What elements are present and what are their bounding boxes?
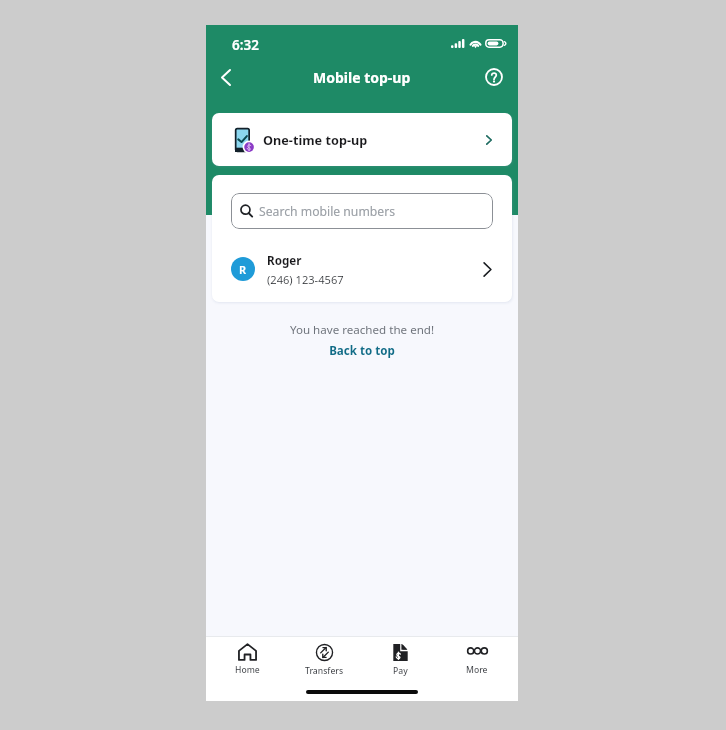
button[interactable]: Back to top xyxy=(206,343,518,359)
button[interactable]: Transfers xyxy=(289,637,359,680)
staticText: More xyxy=(466,664,488,676)
staticText: Transfers xyxy=(305,665,344,676)
button[interactable]: Home xyxy=(212,637,282,680)
staticText: Mobile top-up xyxy=(313,68,411,87)
button[interactable]: Back xyxy=(208,59,244,95)
staticText: Search mobile numbers xyxy=(259,203,396,220)
button[interactable]: One-time top-up xyxy=(212,113,512,166)
button[interactable]: Search mobile numbers xyxy=(231,193,493,229)
staticText: You have reached the end! xyxy=(206,322,518,338)
staticText: Roger xyxy=(267,252,302,268)
staticText: Home xyxy=(235,664,260,676)
staticText: One-time top-up xyxy=(263,131,368,148)
staticText: (246) 123-4567 xyxy=(267,272,344,287)
button[interactable]: Pay xyxy=(365,637,435,680)
button[interactable]: R xyxy=(212,244,512,294)
staticText: 6:32 xyxy=(232,36,259,54)
staticText: R xyxy=(239,262,247,277)
button[interactable]: Help xyxy=(477,60,511,94)
button[interactable]: More xyxy=(442,637,512,680)
staticText: Pay xyxy=(393,665,408,676)
